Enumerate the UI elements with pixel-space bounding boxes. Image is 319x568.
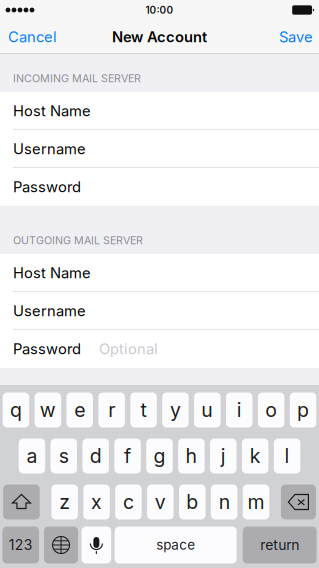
- staticText: h: [185, 444, 197, 468]
- staticText: New Account: [112, 28, 207, 46]
- staticText: OUTGOING MAIL SERVER: [13, 234, 143, 247]
- staticText: j: [221, 444, 226, 468]
- staticText: e: [74, 398, 85, 422]
- button[interactable]: n: [211, 484, 237, 519]
- button[interactable]: e: [66, 392, 93, 427]
- staticText: INCOMING MAIL SERVER: [13, 72, 141, 85]
- staticText: space: [156, 537, 195, 553]
- staticText: w: [40, 398, 56, 422]
- button[interactable]: Username: [0, 130, 319, 168]
- button[interactable]: Password: [0, 330, 319, 368]
- staticText: Host Name: [13, 264, 91, 282]
- staticText: return: [260, 536, 299, 553]
- button[interactable]: j: [210, 438, 237, 473]
- staticText: i: [237, 398, 242, 422]
- button[interactable]: i: [226, 392, 252, 427]
- button[interactable]: k: [242, 438, 268, 473]
- staticText: y: [170, 398, 181, 422]
- staticText: Optional: [99, 340, 158, 358]
- staticText: n: [219, 490, 230, 514]
- staticText: d: [90, 444, 102, 468]
- button[interactable]: w: [35, 392, 61, 427]
- button[interactable]: z: [51, 484, 78, 519]
- button[interactable]: Dictation: [81, 526, 111, 563]
- button[interactable]: p: [290, 392, 316, 427]
- button[interactable]: Save: [271, 20, 319, 54]
- button[interactable]: h: [178, 438, 205, 473]
- staticText: s: [59, 444, 69, 468]
- staticText: k: [250, 444, 261, 468]
- button[interactable]: Delete: [281, 484, 316, 519]
- staticText: c: [123, 490, 134, 514]
- staticText: m: [248, 490, 265, 514]
- staticText: v: [155, 490, 166, 514]
- button[interactable]: v: [147, 484, 174, 519]
- staticText: x: [91, 490, 102, 514]
- button[interactable]: Host Name: [0, 92, 319, 130]
- button[interactable]: l: [274, 438, 300, 473]
- button[interactable]: g: [146, 438, 173, 473]
- button[interactable]: b: [179, 484, 205, 519]
- button[interactable]: a: [19, 438, 45, 473]
- button[interactable]: y: [162, 392, 189, 427]
- button[interactable]: Username: [0, 292, 319, 330]
- staticText: Host Name: [13, 102, 91, 120]
- staticText: 10:00: [145, 4, 173, 16]
- staticText: r: [108, 398, 115, 422]
- button[interactable]: space: [115, 526, 237, 563]
- button[interactable]: Next keyboard: [44, 526, 78, 563]
- button[interactable]: Cancel: [0, 20, 65, 54]
- staticText: Username: [13, 302, 86, 320]
- staticText: o: [265, 398, 277, 422]
- button[interactable]: Shift: [3, 484, 40, 519]
- staticText: l: [285, 444, 290, 468]
- button[interactable]: x: [83, 484, 110, 519]
- button[interactable]: s: [51, 438, 77, 473]
- button[interactable]: u: [194, 392, 221, 427]
- button[interactable]: Password: [0, 168, 319, 206]
- staticText: q: [10, 398, 22, 422]
- staticText: Cancel: [8, 28, 57, 46]
- button[interactable]: return: [243, 526, 317, 563]
- button[interactable]: r: [98, 392, 125, 427]
- button[interactable]: o: [258, 392, 284, 427]
- staticText: f: [124, 444, 131, 468]
- staticText: Save: [279, 28, 313, 46]
- staticText: 123: [9, 536, 33, 553]
- staticText: g: [153, 444, 165, 468]
- staticText: a: [26, 444, 37, 468]
- button[interactable]: m: [243, 484, 269, 519]
- staticText: u: [201, 398, 213, 422]
- staticText: Password: [13, 340, 81, 358]
- button[interactable]: c: [115, 484, 142, 519]
- staticText: b: [186, 490, 198, 514]
- button[interactable]: Host Name: [0, 254, 319, 292]
- staticText: t: [140, 398, 146, 422]
- staticText: Username: [13, 140, 86, 158]
- button[interactable]: 123: [2, 526, 39, 563]
- staticText: z: [59, 490, 70, 514]
- button[interactable]: t: [130, 392, 157, 427]
- button[interactable]: d: [82, 438, 109, 473]
- button[interactable]: f: [114, 438, 141, 473]
- button[interactable]: q: [3, 392, 29, 427]
- staticText: p: [297, 398, 309, 422]
- staticText: Password: [13, 178, 81, 196]
